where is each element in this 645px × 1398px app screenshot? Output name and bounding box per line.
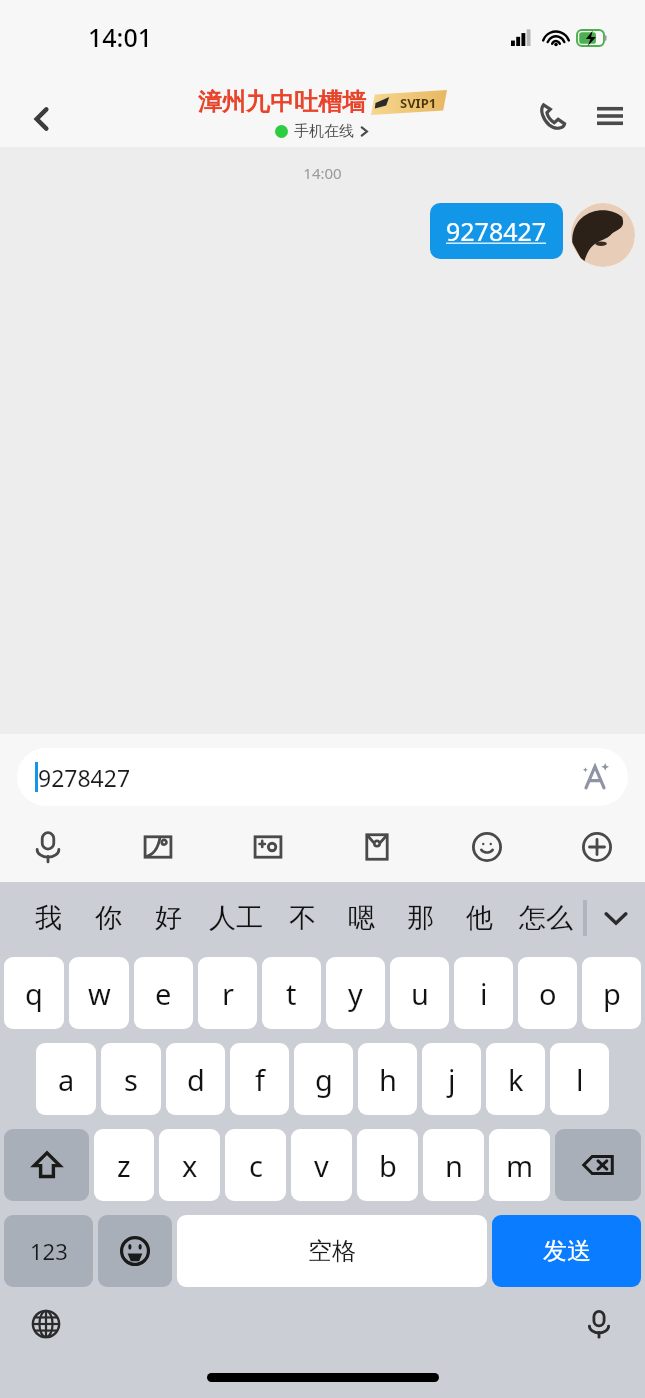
- button[interactable]: k: [486, 1043, 545, 1115]
- button[interactable]: Menu: [585, 91, 635, 141]
- button[interactable]: Emoji: [461, 821, 513, 873]
- button[interactable]: Voice input: [573, 1298, 625, 1350]
- staticText: y: [348, 974, 363, 1013]
- button[interactable]: 嗯: [332, 882, 391, 954]
- staticText: SVIP1: [400, 94, 437, 112]
- button[interactable]: 那: [391, 882, 450, 954]
- button[interactable]: j: [422, 1043, 481, 1115]
- button[interactable]: t: [262, 957, 321, 1029]
- button[interactable]: Back: [14, 91, 70, 147]
- staticText: 你: [95, 901, 122, 935]
- button[interactable]: Avatar: [571, 203, 635, 267]
- staticText: t: [286, 974, 297, 1013]
- staticText: s: [124, 1060, 138, 1099]
- button[interactable]: 123: [4, 1215, 93, 1287]
- staticText: d: [187, 1060, 205, 1099]
- button[interactable]: Collapse suggestions: [587, 882, 645, 954]
- button[interactable]: 不: [273, 882, 332, 954]
- staticText: i: [480, 974, 488, 1013]
- button[interactable]: y: [326, 957, 385, 1029]
- button[interactable]: g: [294, 1043, 353, 1115]
- button[interactable]: 他: [450, 882, 509, 954]
- staticText: 人工: [209, 901, 263, 935]
- button[interactable]: b: [357, 1129, 418, 1201]
- button[interactable]: Red packet: [351, 821, 403, 873]
- button[interactable]: u: [390, 957, 449, 1029]
- staticText: 发送: [543, 1236, 591, 1266]
- staticText: w: [88, 974, 111, 1013]
- staticText: 123: [30, 1236, 68, 1266]
- button[interactable]: c: [225, 1129, 286, 1201]
- staticText: 他: [466, 901, 493, 935]
- staticText: 嗯: [348, 901, 375, 935]
- button[interactable]: 好: [138, 882, 198, 954]
- staticText: 漳州九中吐槽墙: [198, 87, 366, 117]
- button[interactable]: e: [134, 957, 193, 1029]
- staticText: 不: [289, 901, 316, 935]
- staticText: 14:00: [0, 163, 645, 183]
- button[interactable]: 你: [78, 882, 138, 954]
- staticText: m: [506, 1146, 534, 1185]
- button[interactable]: 发送: [492, 1215, 641, 1287]
- button[interactable]: 9278427: [17, 748, 628, 806]
- staticText: 好: [155, 901, 182, 935]
- staticText: n: [445, 1146, 463, 1185]
- staticText: 那: [407, 901, 434, 935]
- staticText: g: [315, 1060, 333, 1099]
- staticText: 9278427: [38, 762, 131, 793]
- staticText: v: [314, 1146, 329, 1185]
- button[interactable]: i: [454, 957, 513, 1029]
- button[interactable]: p: [582, 957, 641, 1029]
- button[interactable]: More: [571, 821, 623, 873]
- staticText: e: [155, 974, 172, 1013]
- button[interactable]: r: [198, 957, 257, 1029]
- button[interactable]: Emoji keyboard: [98, 1215, 172, 1287]
- staticText: j: [448, 1060, 456, 1099]
- staticText: p: [603, 974, 621, 1013]
- button[interactable]: x: [159, 1129, 220, 1201]
- staticText: q: [25, 974, 43, 1013]
- button[interactable]: v: [291, 1129, 352, 1201]
- staticText: 9278427: [446, 214, 547, 248]
- staticText: x: [182, 1146, 198, 1185]
- button[interactable]: Voice: [22, 821, 74, 873]
- button[interactable]: Call: [527, 91, 577, 141]
- button[interactable]: d: [166, 1043, 225, 1115]
- button[interactable]: l: [550, 1043, 609, 1115]
- staticText: 怎么: [519, 901, 573, 935]
- button[interactable]: q: [4, 957, 64, 1029]
- button[interactable]: a: [36, 1043, 96, 1115]
- staticText: z: [117, 1146, 131, 1185]
- button[interactable]: Switch language: [20, 1298, 72, 1350]
- button[interactable]: 9278427: [430, 203, 563, 259]
- staticText: o: [539, 974, 557, 1013]
- staticText: 手机在线: [294, 122, 354, 141]
- button[interactable]: o: [518, 957, 577, 1029]
- button[interactable]: n: [423, 1129, 484, 1201]
- button[interactable]: 空格: [177, 1215, 487, 1287]
- staticText: h: [379, 1060, 397, 1099]
- button[interactable]: w: [69, 957, 129, 1029]
- button[interactable]: Backspace: [555, 1129, 641, 1201]
- button[interactable]: z: [94, 1129, 154, 1201]
- button[interactable]: 怎么: [509, 882, 583, 954]
- button[interactable]: m: [489, 1129, 550, 1201]
- button[interactable]: Shift: [4, 1129, 89, 1201]
- staticText: k: [508, 1060, 524, 1099]
- staticText: 空格: [308, 1236, 356, 1266]
- button[interactable]: 人工: [198, 882, 273, 954]
- button[interactable]: Photo: [132, 821, 184, 873]
- staticText: l: [576, 1060, 584, 1099]
- button[interactable]: 漳州九中吐槽墙: [198, 87, 447, 141]
- button[interactable]: Sticker: [242, 821, 294, 873]
- button[interactable]: h: [358, 1043, 417, 1115]
- staticText: b: [379, 1146, 397, 1185]
- button[interactable]: s: [101, 1043, 161, 1115]
- button[interactable]: f: [230, 1043, 289, 1115]
- button[interactable]: 我: [18, 882, 78, 954]
- staticText: c: [249, 1146, 263, 1185]
- staticText: u: [411, 974, 429, 1013]
- staticText: 我: [35, 901, 62, 935]
- staticText: f: [255, 1060, 265, 1099]
- staticText: 14:01: [88, 20, 153, 54]
